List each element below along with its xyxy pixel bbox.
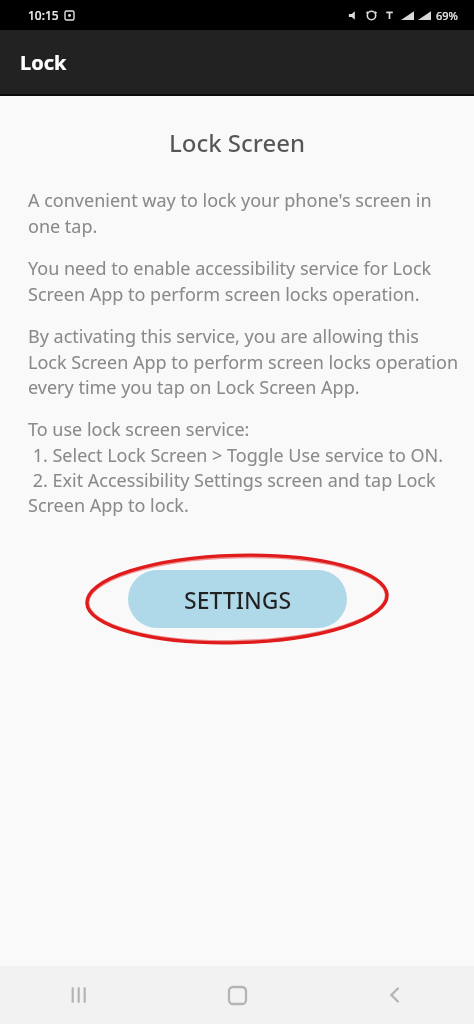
staticText: SETTINGS xyxy=(184,584,292,615)
staticText: Lock xyxy=(20,49,67,76)
staticText: Lock Screen xyxy=(0,126,474,159)
staticText: 10:15 xyxy=(28,7,59,23)
button[interactable]: Back xyxy=(316,966,474,1024)
staticText: A convenient way to lock your phone's sc… xyxy=(28,188,458,238)
button[interactable]: Home xyxy=(158,966,316,1024)
staticText: By activating this service, you are allo… xyxy=(28,324,458,399)
button[interactable]: SETTINGS xyxy=(128,570,347,628)
button[interactable]: Recent apps xyxy=(0,966,158,1024)
staticText: 69% xyxy=(436,8,458,23)
staticText: To use lock screen service: 1. Select Lo… xyxy=(28,417,458,517)
staticText: You need to enable accessibility service… xyxy=(28,256,458,306)
